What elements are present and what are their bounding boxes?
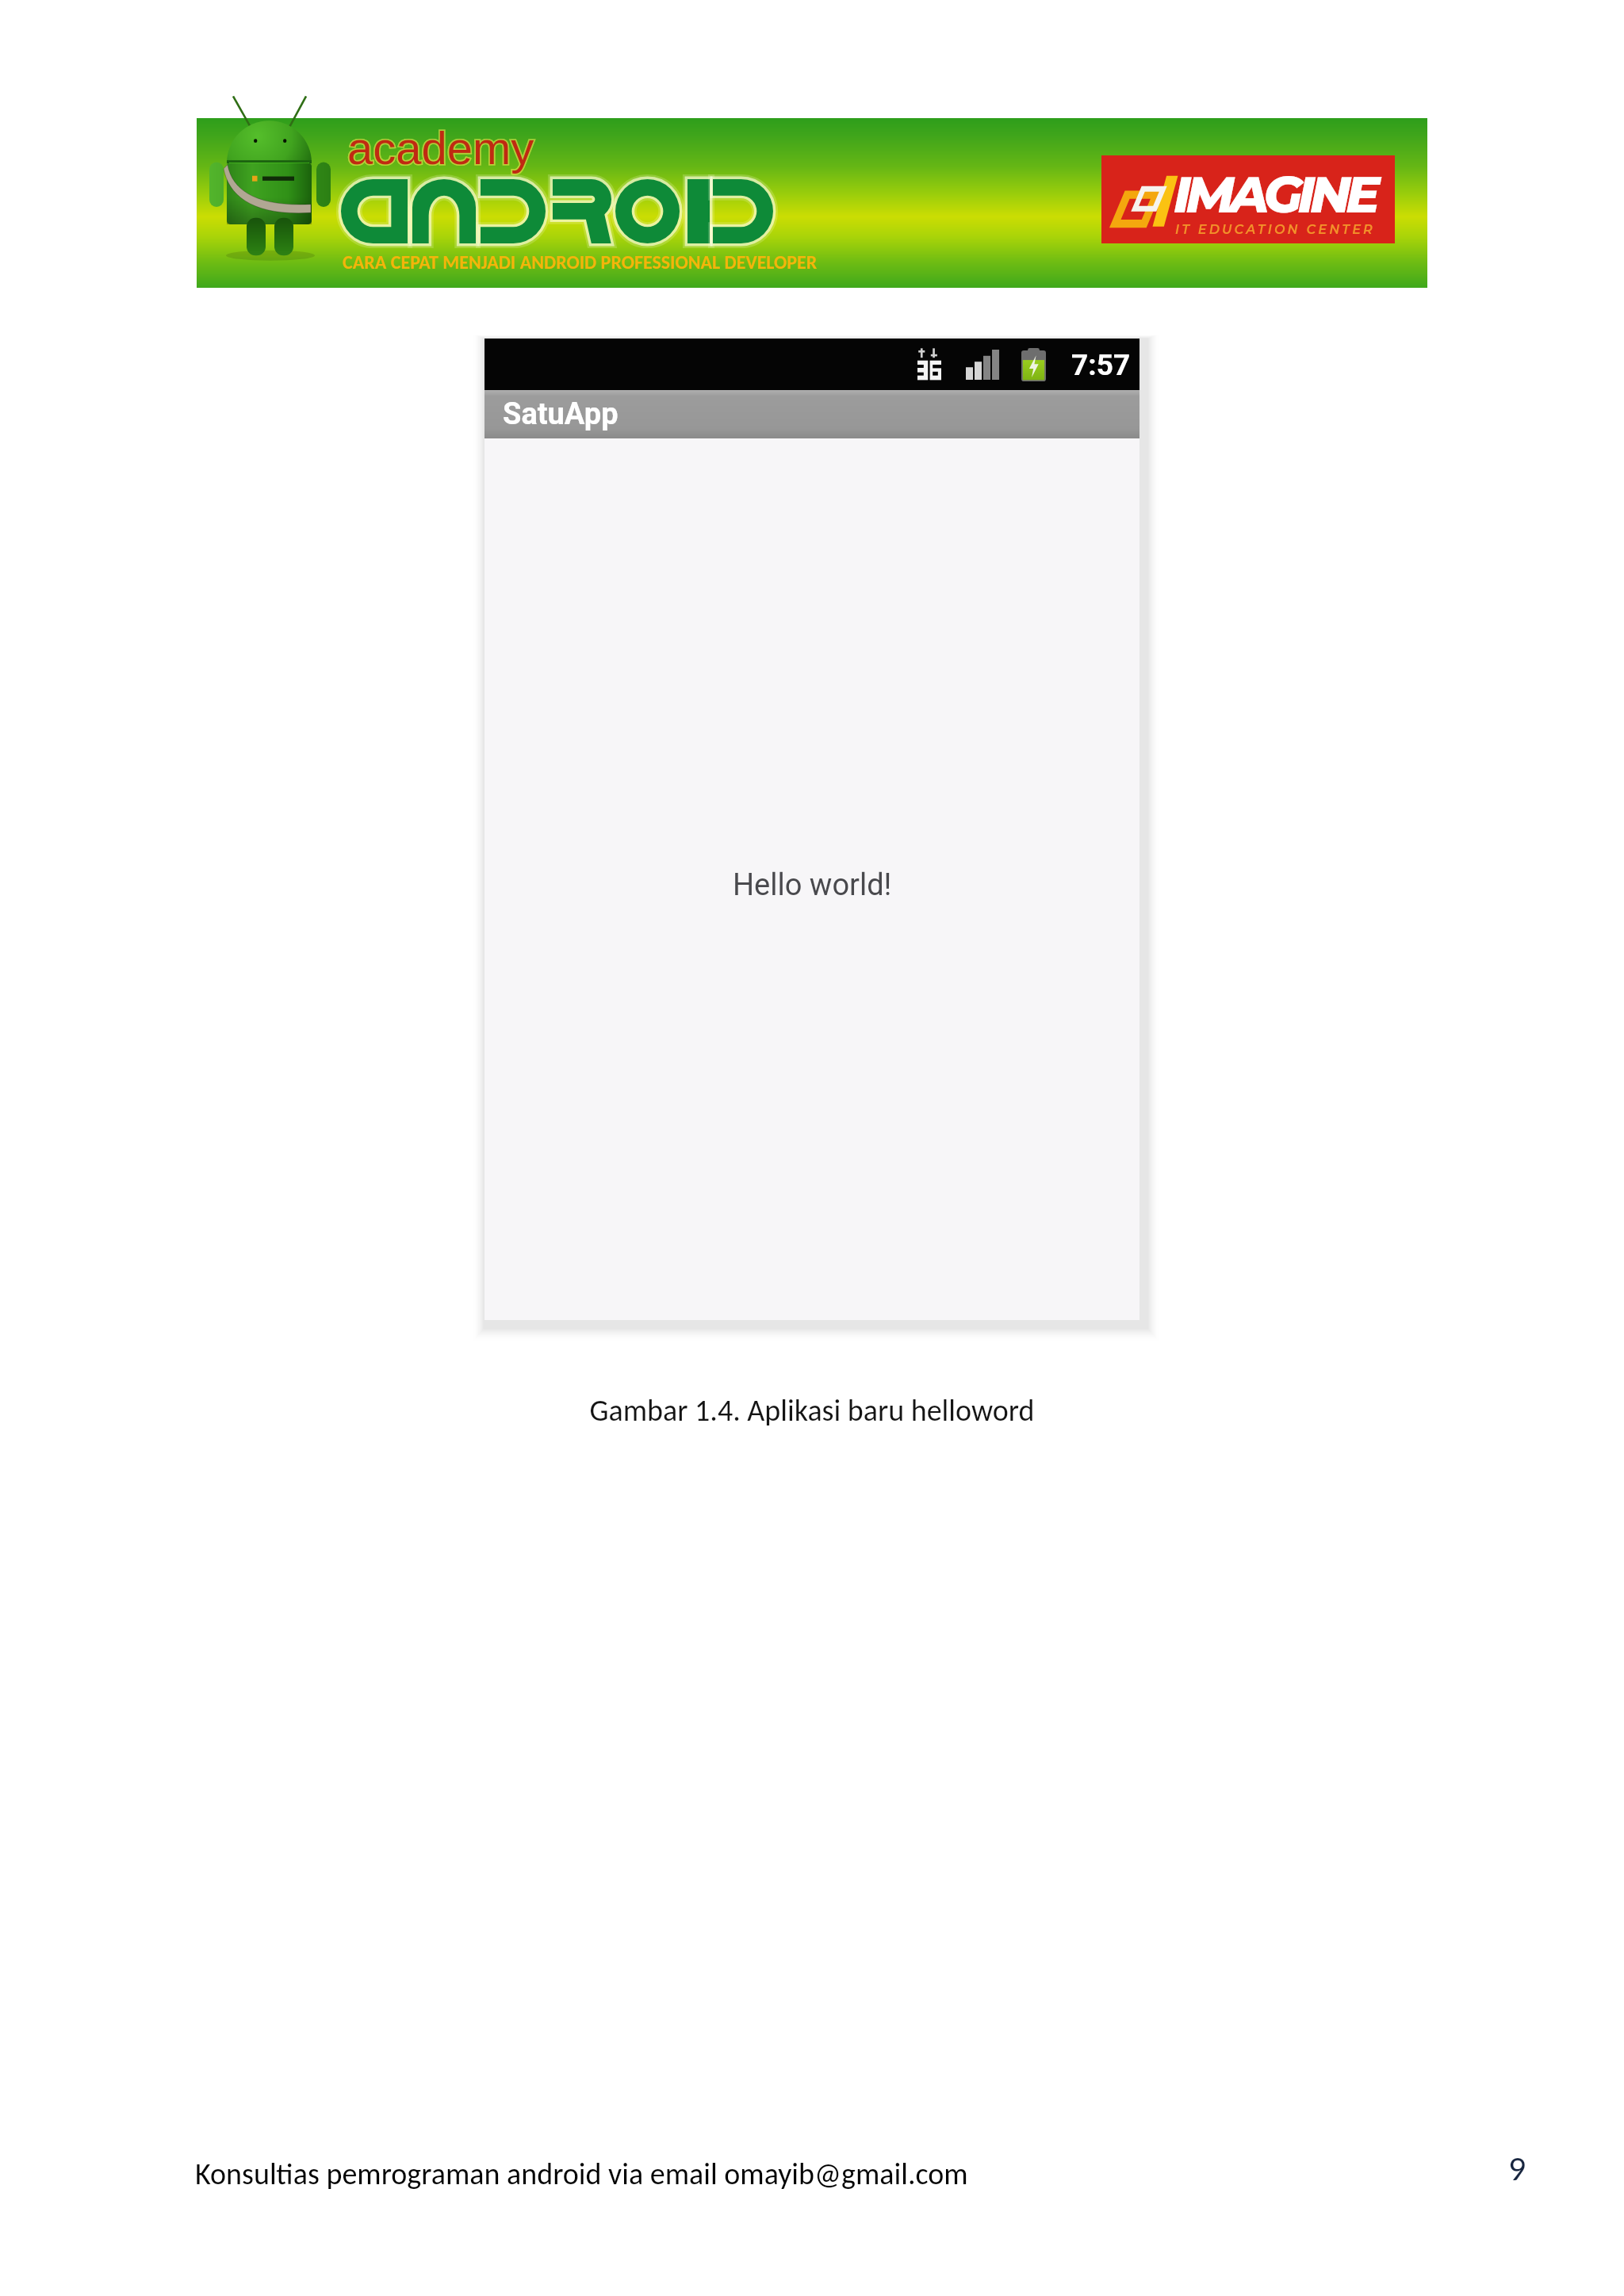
other: Battery charging xyxy=(1021,348,1046,381)
staticText: Hello world! xyxy=(733,867,892,903)
staticText: IMAGINE xyxy=(1174,163,1375,225)
staticText: CARA CEPAT MENJADI ANDROID PROFESSIONAL … xyxy=(343,251,818,274)
staticText: SatuApp xyxy=(503,396,619,432)
staticText: 7:57 xyxy=(1071,348,1131,382)
staticText: Konsultias pemrograman android via email… xyxy=(195,2156,968,2192)
staticText: 9 xyxy=(1508,2147,1526,2190)
staticText: academy xyxy=(347,122,534,174)
staticText: academy xyxy=(347,122,534,174)
other: 3G network xyxy=(917,347,941,382)
staticText: IT EDUCATION CENTER xyxy=(1175,222,1375,238)
button[interactable]: SatuApp xyxy=(485,390,1139,438)
other: Signal strength xyxy=(966,350,999,380)
staticText: Gambar 1.4. Aplikasi baru helloword xyxy=(0,1392,1624,1429)
